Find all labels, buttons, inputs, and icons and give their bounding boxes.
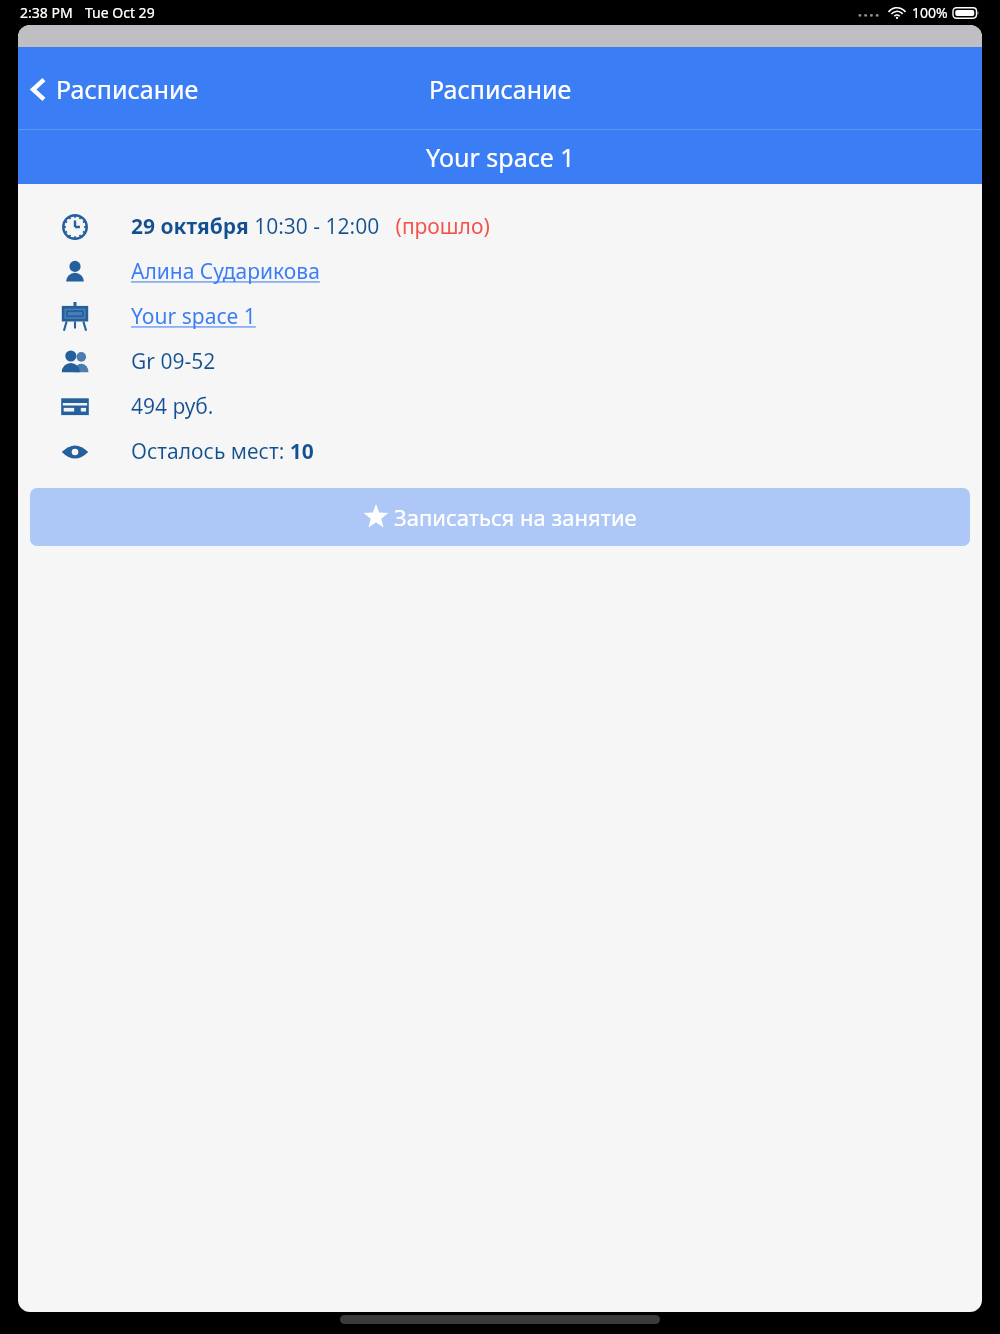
button[interactable]: Your space 1	[18, 294, 982, 339]
staticText: 29 октября 10:30 - 12:00 (прошло)	[131, 212, 490, 241]
button[interactable]: Gr 09-52	[18, 339, 982, 384]
button[interactable]: Your space 1	[131, 302, 256, 331]
staticText: Осталось мест: 10	[131, 437, 314, 466]
button[interactable]: 494 руб.	[18, 384, 982, 429]
staticText: Your space 1	[131, 302, 256, 331]
button[interactable]: Back	[22, 62, 207, 116]
staticText: Алина Сударикова	[131, 257, 320, 286]
staticText: 100%	[912, 3, 948, 22]
staticText: 494 руб.	[131, 392, 214, 421]
button[interactable]: Осталось мест: 10	[18, 429, 982, 474]
staticText: 2:38 PM	[20, 3, 73, 22]
staticText: Записаться на занятие	[394, 502, 637, 532]
staticText: Расписание	[56, 72, 199, 106]
button[interactable]: 29 октября 10:30 - 12:00 (прошло)	[18, 204, 982, 249]
staticText: Tue Oct 29	[85, 3, 155, 22]
staticText: Your space 1	[426, 140, 575, 174]
button[interactable]: Записаться на занятие	[30, 488, 970, 546]
staticText: Gr 09-52	[131, 347, 216, 376]
staticText: Расписание	[429, 72, 572, 106]
button[interactable]: Алина Сударикова	[131, 257, 320, 286]
other: Back	[30, 75, 47, 104]
button[interactable]: Алина Сударикова	[18, 249, 982, 294]
